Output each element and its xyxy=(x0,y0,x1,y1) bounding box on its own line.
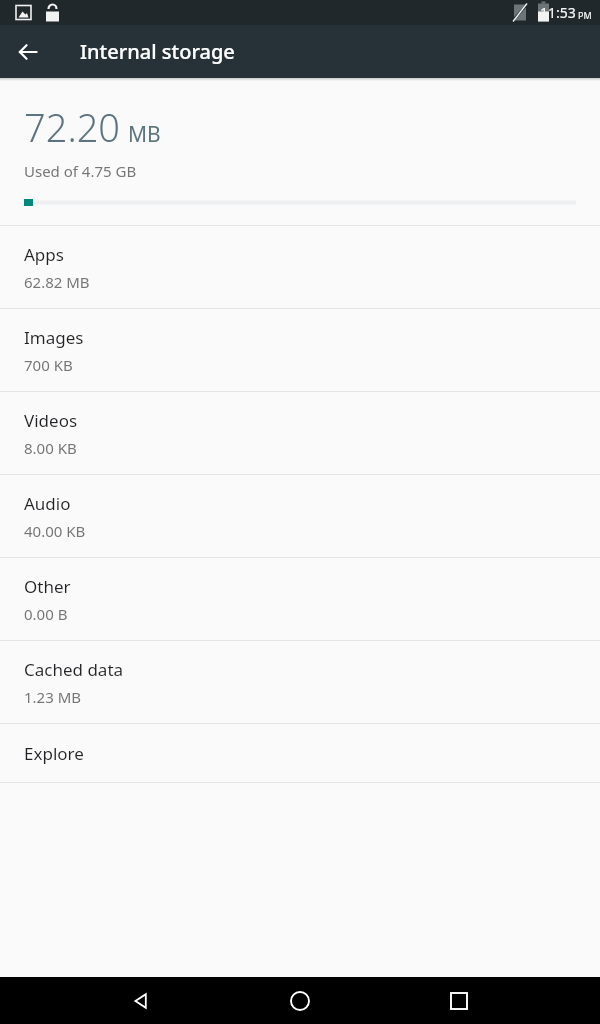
staticText: 0.00 B xyxy=(24,604,68,624)
staticText: 8.00 KB xyxy=(24,438,77,458)
staticText: Images xyxy=(24,326,84,349)
staticText: Apps xyxy=(24,243,64,266)
button[interactable]: Other xyxy=(0,558,600,640)
staticText: Cached data xyxy=(24,658,124,681)
staticText: 1.23 MB xyxy=(24,687,82,707)
button[interactable]: Cached data xyxy=(0,641,600,723)
button[interactable]: Images xyxy=(0,309,600,391)
button[interactable]: Audio xyxy=(0,475,600,557)
button[interactable]: Explore xyxy=(0,724,600,782)
button[interactable]: Back xyxy=(113,977,169,1024)
staticText: 700 KB xyxy=(24,355,73,375)
staticText: Other xyxy=(24,575,71,598)
staticText: Explore xyxy=(24,742,84,765)
staticText: 62.82 MB xyxy=(24,272,90,292)
staticText: Audio xyxy=(24,492,71,515)
button[interactable]: Recent apps xyxy=(431,977,487,1024)
staticText: 11:53 xyxy=(540,3,576,22)
button[interactable]: Videos xyxy=(0,392,600,474)
button[interactable]: Navigate up xyxy=(0,25,56,78)
staticText: 40.00 KB xyxy=(24,521,86,541)
staticText: MB xyxy=(128,120,161,149)
staticText: Internal storage xyxy=(80,38,235,65)
staticText: Used of 4.75 GB xyxy=(24,161,137,181)
button[interactable]: Home xyxy=(272,977,328,1024)
staticText: PM xyxy=(578,9,592,21)
staticText: Videos xyxy=(24,409,78,432)
button[interactable]: Apps xyxy=(0,226,600,308)
staticText: 72.20 xyxy=(24,101,121,153)
